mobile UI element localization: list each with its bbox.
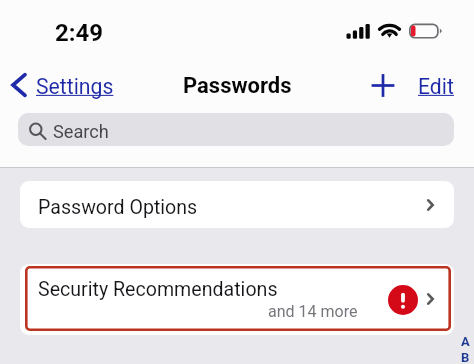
staticText: Settings bbox=[36, 74, 114, 99]
staticText: B bbox=[461, 350, 470, 364]
button[interactable]: Add password bbox=[364, 68, 400, 104]
staticText: and 14 more bbox=[268, 302, 358, 321]
button[interactable]: Search bbox=[18, 113, 454, 146]
staticText: Edit bbox=[418, 74, 454, 99]
button[interactable]: Edit bbox=[418, 68, 454, 104]
staticText: Passwords bbox=[183, 73, 292, 99]
staticText: 2:49 bbox=[55, 19, 104, 47]
button[interactable]: Settings bbox=[6, 68, 114, 104]
button[interactable]: Password Options bbox=[20, 181, 454, 228]
staticText: A bbox=[461, 334, 470, 349]
button[interactable]: Security Recommendations bbox=[20, 264, 454, 335]
staticText: Password Options bbox=[38, 196, 198, 219]
staticText: Security Recommendations bbox=[38, 278, 278, 301]
staticText: Search bbox=[53, 121, 109, 142]
button[interactable]: Alphabetical index bbox=[461, 334, 470, 364]
